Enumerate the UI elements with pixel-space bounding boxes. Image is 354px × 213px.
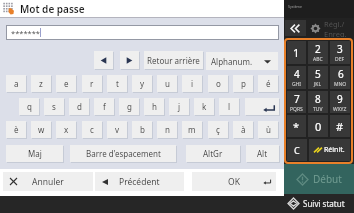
staticText: # [336, 119, 344, 134]
button[interactable]: 3 [330, 41, 350, 64]
button[interactable]: Alphanum. [206, 52, 278, 70]
button[interactable]: g [119, 98, 139, 115]
button[interactable]: q [19, 98, 39, 115]
staticText: Régl./ [324, 19, 345, 29]
button[interactable]: j [169, 98, 189, 115]
button[interactable]: a [6, 75, 26, 92]
button[interactable]: ù [258, 121, 278, 138]
staticText: o [216, 78, 221, 89]
button[interactable]: ******* [6, 25, 279, 40]
staticText: ù [266, 124, 271, 135]
button[interactable]: w [31, 121, 51, 138]
button[interactable]: Retour arrière [144, 51, 203, 69]
staticText: s [52, 101, 56, 112]
button[interactable]: Collapse panel [285, 20, 306, 36]
staticText: Maj [28, 148, 42, 159]
staticText: 8 [315, 92, 321, 106]
staticText: c [90, 124, 94, 135]
staticText: 7 [294, 92, 300, 106]
staticText: PQRS [290, 106, 303, 113]
staticText: JKL [314, 81, 322, 88]
button[interactable]: i [182, 75, 202, 92]
staticText: TUV [313, 106, 323, 113]
staticText: z [39, 78, 43, 89]
button[interactable]: Suivi statut [284, 194, 354, 213]
button[interactable]: 0 [308, 115, 328, 137]
button[interactable]: Régl./ [310, 19, 347, 37]
button[interactable]: 9 [330, 91, 350, 113]
button[interactable]: 2 [308, 41, 328, 64]
button[interactable]: Début [284, 164, 354, 194]
button[interactable]: m [182, 121, 202, 138]
staticText: 6 [338, 67, 344, 81]
staticText: a [14, 78, 19, 89]
staticText: à [241, 124, 246, 135]
staticText: Précédent [119, 176, 160, 188]
staticText: 2 [315, 42, 321, 56]
button[interactable]: Précédent [95, 172, 184, 191]
button[interactable] [94, 51, 113, 69]
staticText: Alphanum. [211, 56, 253, 67]
button[interactable]: b [132, 121, 152, 138]
staticText: Début [313, 172, 342, 186]
button[interactable]: OK [192, 172, 276, 191]
button[interactable]: 6 [330, 66, 350, 89]
button[interactable]: s [44, 98, 64, 115]
staticText: GHI [292, 81, 302, 88]
button[interactable] [245, 98, 279, 115]
button[interactable]: c [82, 121, 102, 138]
staticText: Annuler [32, 176, 64, 188]
button[interactable] [120, 51, 139, 69]
staticText: é [266, 78, 271, 89]
button[interactable]: o [208, 75, 228, 92]
staticText: 0 [315, 119, 322, 134]
staticText: Système [288, 4, 302, 9]
button[interactable]: z [31, 75, 51, 92]
button[interactable]: Maj [6, 145, 63, 162]
staticText: è [14, 124, 19, 135]
button[interactable]: y [132, 75, 152, 92]
button[interactable]: 8 [308, 91, 328, 113]
staticText: Réinit. [324, 145, 345, 155]
button[interactable]: AltGr [186, 145, 240, 162]
staticText: DEF [335, 56, 345, 63]
button[interactable]: 1 [287, 41, 306, 64]
button[interactable]: f [94, 98, 114, 115]
button[interactable]: Réinit. [309, 139, 350, 161]
button[interactable]: è [6, 121, 26, 138]
button[interactable]: k [194, 98, 214, 115]
button[interactable]: x [56, 121, 76, 138]
button[interactable]: é [258, 75, 278, 92]
button[interactable]: 7 [287, 91, 306, 113]
staticText: b [140, 124, 145, 135]
staticText: e [64, 78, 69, 89]
staticText: j [178, 101, 181, 112]
button[interactable]: 4 [287, 66, 306, 89]
button[interactable]: u [157, 75, 177, 92]
button[interactable]: h [144, 98, 164, 115]
staticText: Enreg. [324, 29, 347, 37]
button[interactable]: ç [208, 121, 228, 138]
button[interactable]: p [233, 75, 253, 92]
button[interactable]: * [287, 115, 306, 137]
button[interactable]: t [107, 75, 127, 92]
button[interactable]: r [82, 75, 102, 92]
button[interactable]: # [330, 115, 350, 137]
button[interactable]: n [157, 121, 177, 138]
staticText: C [294, 144, 300, 156]
button[interactable]: C [287, 139, 307, 161]
staticText: ABC [313, 56, 323, 63]
staticText: Retour arrière [147, 55, 200, 66]
button[interactable]: Barre d'espacement [70, 145, 176, 162]
staticText: * [293, 119, 300, 134]
button[interactable]: l [219, 98, 239, 115]
staticText: Barre d'espacement [86, 148, 161, 159]
button[interactable]: Annuler [3, 172, 93, 191]
button[interactable]: 5 [308, 66, 328, 89]
button[interactable]: Alt [246, 145, 279, 162]
button[interactable]: à [233, 121, 253, 138]
staticText: u [165, 78, 170, 89]
button[interactable]: e [56, 75, 76, 92]
button[interactable]: v [107, 121, 127, 138]
button[interactable]: d [69, 98, 89, 115]
